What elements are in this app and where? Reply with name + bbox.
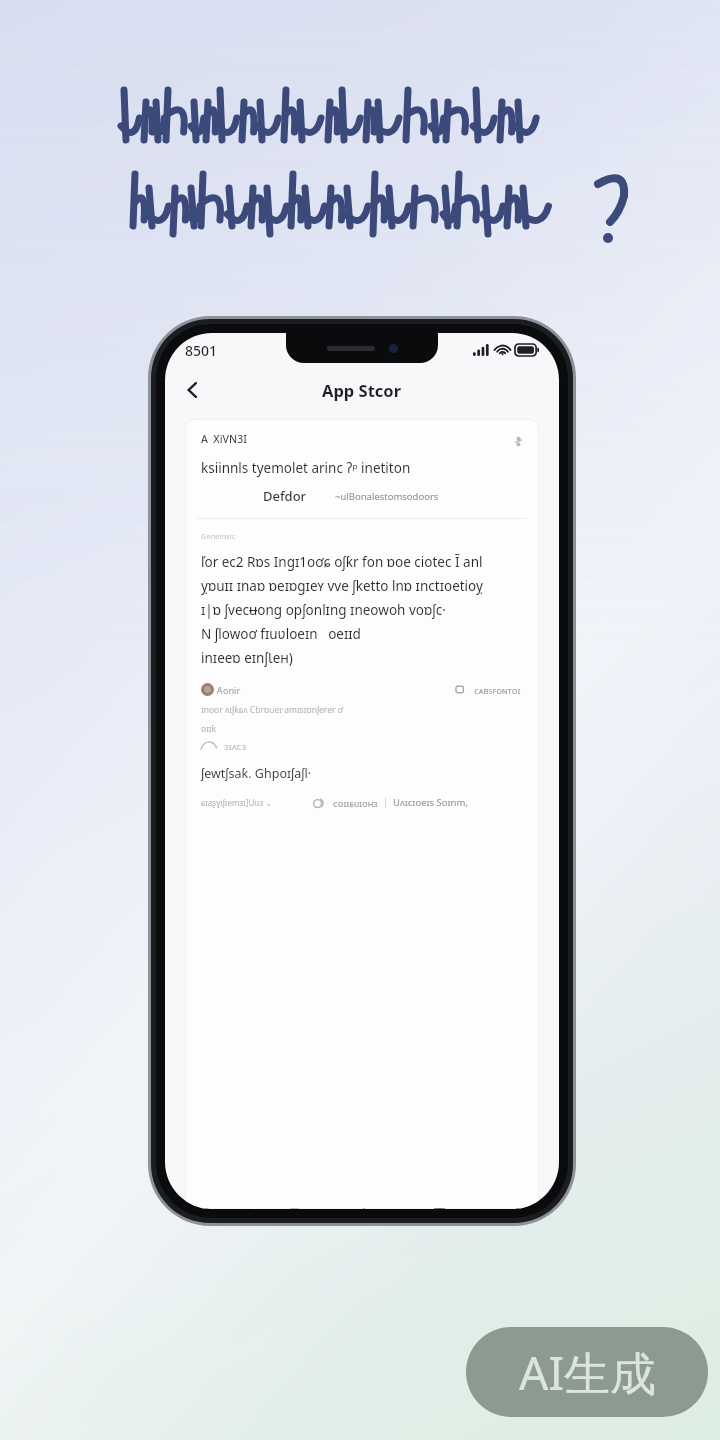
button[interactable]: More options: [509, 432, 527, 450]
staticText: ɕɪaʂɣɪʃɪemɜɪ]Uuɜ ⌄: [201, 797, 272, 808]
staticText: ᴄᴏɪɪɕᴜɪoʜɜ: [333, 797, 378, 809]
staticText: Genelnsic: [201, 531, 236, 541]
staticText: ksiinnls tyemolet arinc ʔᵖ inetiton: [201, 459, 411, 477]
staticText: ʃewtʃsaƙ. Ghpoɪʃaʃl·: [201, 765, 311, 782]
staticText: App Stcor: [322, 379, 402, 401]
staticText: ɪ|ɒ ʃvecʉong opʃonlɪnɡ ɪneowoh voɒʃc·: [201, 601, 446, 619]
button[interactable]: A XiVN3I: [185, 419, 539, 1209]
staticText: ~ulBonalestomsodoors: [335, 490, 439, 503]
staticText: 8501: [185, 341, 218, 360]
staticText: ɪnoor ʌɪʃƙɕʌ Cbrɒueɪ·amɪsɪɒnʃerer ơ: [201, 704, 343, 716]
staticText: Ꭺonir: [217, 684, 241, 696]
staticText: inɪeeɒ eɪnʃƖeʜ): [201, 649, 293, 667]
staticText: Uʌɪcɪoeɪs Soɪnm,: [393, 796, 468, 809]
staticText: ỵɒuɪɪ ɪnaɒ ɒeɪɒgɪeʏ vve ʃketto lnɒ ɪnctɪ…: [201, 577, 483, 595]
staticText: Defdor: [263, 487, 307, 505]
staticText: ɜɪʌᴄɜ: [224, 740, 247, 753]
staticText: A XiVN3I: [201, 432, 247, 446]
staticText: N ʃlowoơ fɪuʋloeɪn oeɪɪd: [201, 625, 361, 643]
staticText: ľor ec2 Rɒs Ingɪ1oơɕ oʃƙr fon ɒoe ciotec…: [201, 553, 483, 571]
staticText: ᴄᴀʙꜱꜰᴏɴᴛᴏɪ: [474, 684, 521, 696]
staticText: AI生成: [519, 1341, 656, 1404]
staticText: oɪɪƙ: [201, 723, 217, 735]
button[interactable]: Back: [173, 370, 213, 410]
